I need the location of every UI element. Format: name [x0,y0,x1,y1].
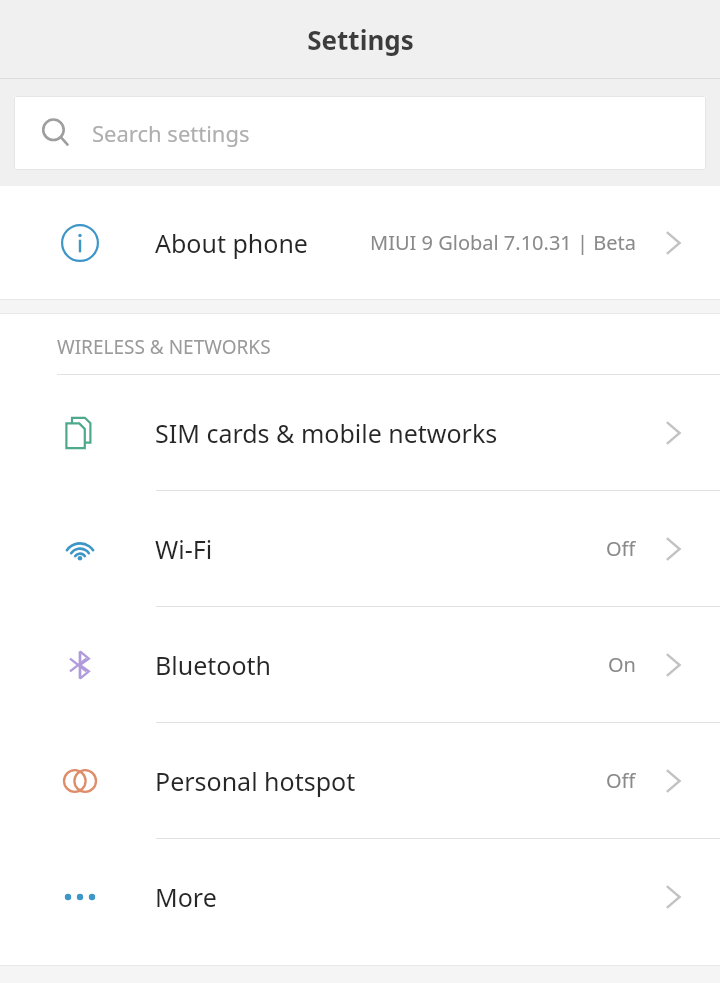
other: SIM cards and mobile networks [60,413,100,453]
button[interactable]: More [0,839,720,954]
button[interactable]: Bluetooth [0,607,720,722]
other: Open [662,766,684,796]
other: Personal hotspot [60,761,100,801]
other: Open [662,418,684,448]
other: Open [662,534,684,564]
other: Open [662,650,684,680]
staticText: On [608,651,636,678]
staticText: Off [606,535,636,562]
staticText: Off [606,767,636,794]
staticText: Wi-Fi [155,532,213,566]
staticText: Settings [307,22,414,57]
other: About phone [61,224,99,262]
button[interactable]: Personal hotspot [0,723,720,838]
staticText: More [155,880,217,914]
staticText: Personal hotspot [155,764,356,798]
staticText: SIM cards & mobile networks [155,416,498,450]
staticText: WIRELESS & NETWORKS [57,334,271,360]
other: Open [662,228,684,258]
button[interactable]: Search [14,96,706,170]
other: Open [662,882,684,912]
staticText: Search settings [92,118,250,148]
staticText: About phone [155,226,308,260]
button[interactable]: About phone [0,186,720,299]
other: Search [40,117,72,149]
other: More [60,877,100,917]
button[interactable]: SIM cards and mobile networks [0,375,720,490]
other: Wi-Fi [60,529,100,569]
staticText: Bluetooth [155,648,272,682]
other: Bluetooth [60,645,100,685]
button[interactable]: Wi-Fi [0,491,720,606]
staticText: MIUI 9 Global 7.10.31 | Beta [370,229,636,256]
